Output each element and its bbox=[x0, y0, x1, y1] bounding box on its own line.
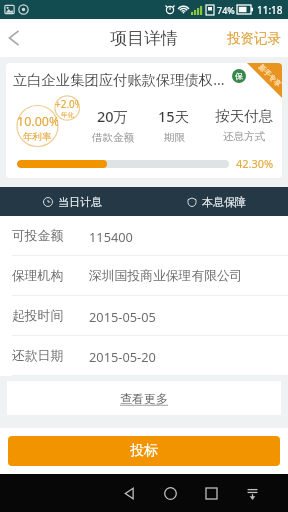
staticText: 本息保障 bbox=[202, 195, 246, 209]
staticText: 10.00% bbox=[17, 113, 58, 130]
button[interactable]: 起投时间 bbox=[0, 296, 288, 336]
button[interactable]: Hide keyboard bbox=[232, 474, 273, 512]
button[interactable]: Back bbox=[0, 19, 28, 57]
staticText: 投资记录 bbox=[227, 30, 281, 47]
staticText: 2015-05-20 bbox=[89, 348, 156, 365]
button[interactable]: 当日计息 bbox=[0, 187, 144, 216]
staticText: 立白企业集团应付账款保理债权... bbox=[13, 70, 225, 90]
staticText: 项目详情 bbox=[110, 28, 178, 49]
button[interactable]: 保理机构 bbox=[0, 256, 288, 296]
staticText: 按天付息 bbox=[215, 107, 273, 125]
staticText: 还息方式 bbox=[223, 130, 265, 143]
button[interactable]: 可投金额 bbox=[0, 216, 288, 256]
staticText: 保理机构 bbox=[12, 268, 64, 284]
staticText: 年利率 bbox=[23, 131, 52, 143]
button[interactable]: 本息保障 bbox=[144, 187, 288, 216]
button[interactable]: Home bbox=[150, 474, 191, 512]
button[interactable]: Recents bbox=[191, 474, 232, 512]
staticText: 15天 bbox=[158, 106, 190, 126]
staticText: 11:18 bbox=[257, 3, 283, 17]
staticText: 42.30% bbox=[236, 156, 274, 171]
button[interactable]: Back bbox=[109, 474, 150, 512]
staticText: 查看更多 bbox=[120, 391, 168, 406]
staticText: 74% bbox=[217, 4, 235, 16]
staticText: 年化 bbox=[61, 111, 74, 119]
staticText: 还款日期 bbox=[12, 348, 64, 364]
button[interactable]: 还款日期 bbox=[0, 336, 288, 376]
staticText: 2015-05-05 bbox=[89, 308, 156, 325]
staticText: 期限 bbox=[164, 131, 185, 144]
staticText: 起投时间 bbox=[12, 308, 64, 324]
staticText: 投标 bbox=[130, 442, 158, 460]
staticText: +2.0% bbox=[55, 97, 79, 111]
staticText: 可投金额 bbox=[12, 228, 64, 244]
staticText: 借款金额 bbox=[92, 131, 134, 144]
staticText: 20万 bbox=[97, 106, 129, 126]
button[interactable]: 投资记录 bbox=[227, 19, 281, 57]
staticText: 115400 bbox=[89, 228, 133, 245]
staticText: 当日计息 bbox=[58, 195, 102, 209]
staticText: 深圳国投商业保理有限公司 bbox=[89, 268, 243, 284]
button[interactable]: 投标 bbox=[8, 436, 280, 466]
button[interactable]: 查看更多 bbox=[7, 381, 281, 415]
staticText: 保 bbox=[235, 71, 243, 81]
staticText: 新手专享 bbox=[257, 63, 282, 89]
